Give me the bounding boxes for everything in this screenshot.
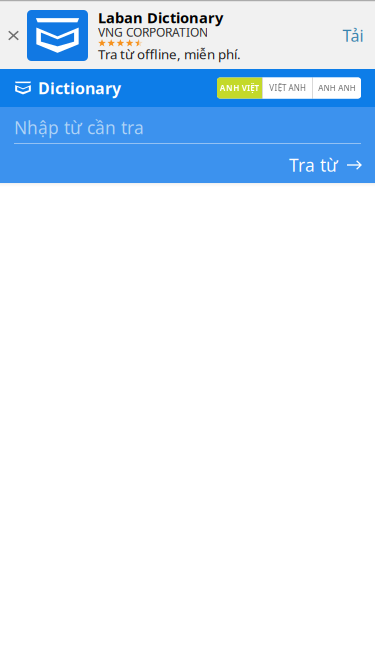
button[interactable]: Tải — [331, 2, 375, 69]
staticText: VIỆT ANH — [269, 83, 306, 93]
staticText: Dictionary — [38, 77, 121, 99]
button[interactable]: VIỆT ANH — [263, 77, 312, 98]
staticText: Tra từ offline, miễn phí. — [98, 45, 241, 63]
button[interactable]: Nhập từ cần tra — [0, 117, 361, 138]
staticText: ANH ANH — [318, 83, 356, 93]
staticText: VNG CORPORATION — [98, 24, 208, 40]
button[interactable]: Close app banner — [0, 2, 27, 69]
staticText: ANH VIỆT — [220, 83, 259, 93]
button[interactable]: Tra từ — [289, 154, 361, 176]
button[interactable]: ANH VIỆT — [217, 77, 262, 98]
staticText: Tải — [342, 25, 363, 46]
staticText: Tra từ — [289, 153, 338, 176]
staticText: Nhập từ cần tra — [14, 116, 144, 139]
staticText: Laban Dictionary — [98, 8, 223, 27]
button[interactable]: ANH ANH — [313, 77, 361, 98]
